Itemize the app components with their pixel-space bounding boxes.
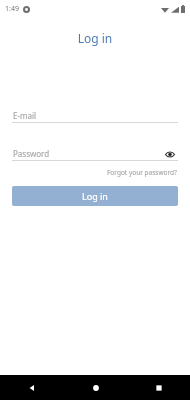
staticText: Forgot your password? <box>107 168 177 177</box>
staticText: Log in <box>82 190 108 202</box>
button[interactable]: Back <box>0 375 64 400</box>
staticText: Password <box>13 148 50 159</box>
button[interactable]: Recent apps <box>127 375 190 400</box>
button[interactable]: E-mail <box>12 108 178 123</box>
button[interactable]: Show password <box>164 148 176 160</box>
staticText: E-mail <box>13 110 37 121</box>
button[interactable]: Log in <box>12 186 178 206</box>
staticText: Log in <box>0 30 190 46</box>
button[interactable]: Password <box>12 146 178 161</box>
button[interactable]: Forgot your password? <box>106 167 178 178</box>
staticText: 1:49 <box>5 4 19 14</box>
button[interactable]: Home <box>64 375 127 400</box>
